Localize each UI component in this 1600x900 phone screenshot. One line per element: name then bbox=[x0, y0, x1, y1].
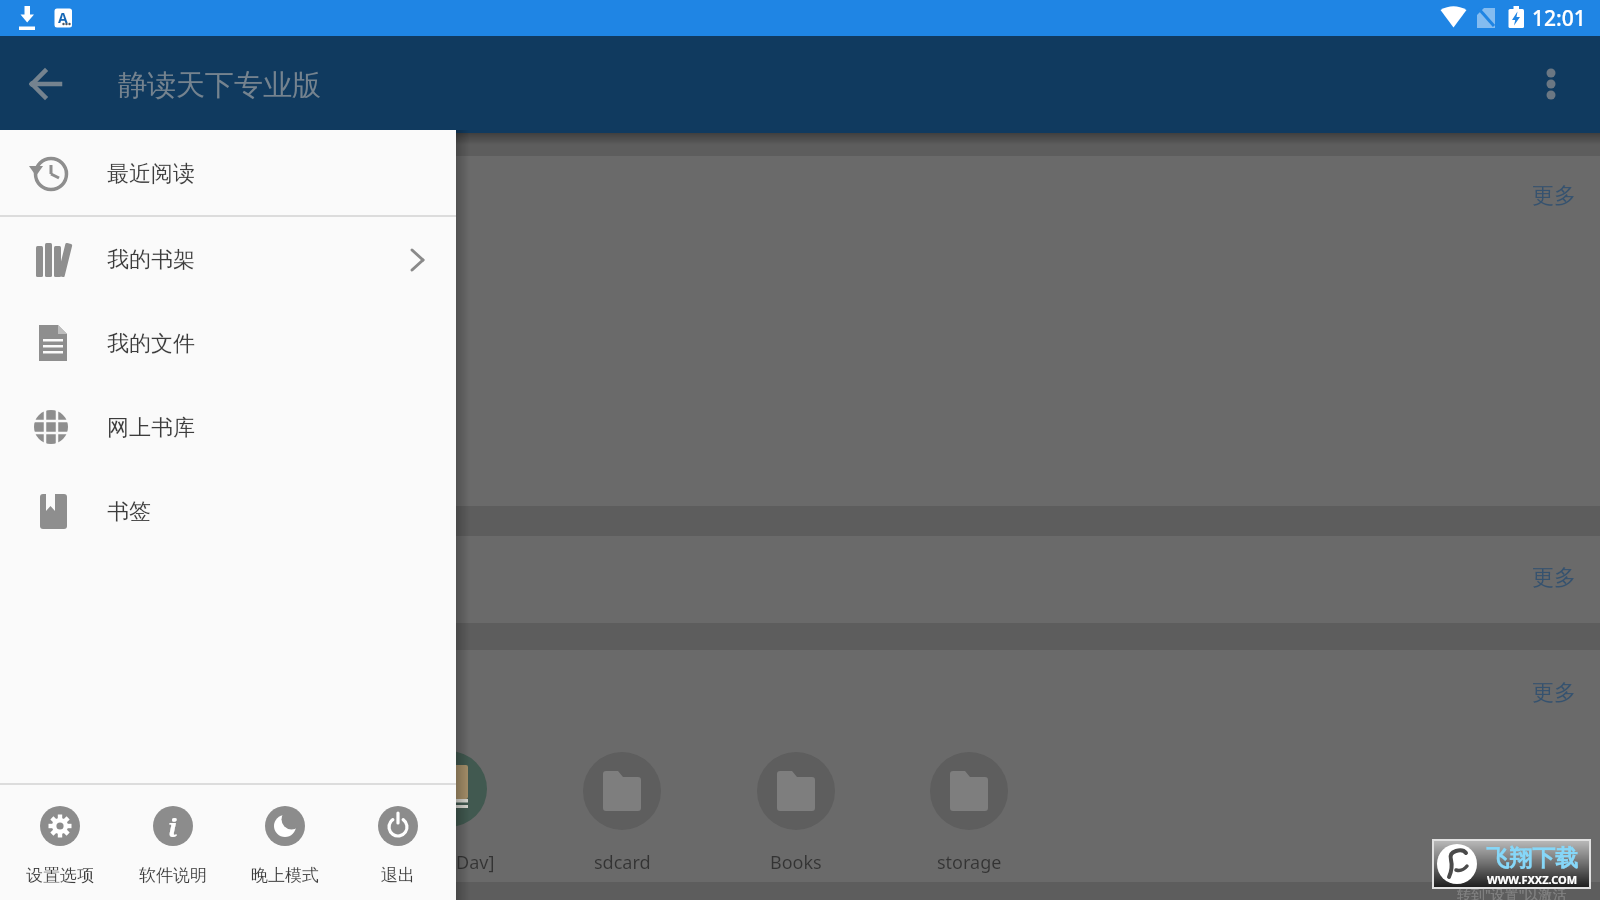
staticText: 网上书库 bbox=[107, 414, 195, 442]
staticText: 最近阅读 bbox=[107, 160, 195, 188]
staticText: 我的书架 bbox=[107, 246, 195, 274]
staticText: 书签 bbox=[107, 498, 151, 526]
staticText: Books bbox=[770, 850, 822, 875]
staticText: 12:01 bbox=[1532, 4, 1586, 33]
staticText: A bbox=[58, 8, 68, 27]
staticText: storage bbox=[937, 850, 1002, 875]
staticText: 更多 bbox=[1532, 564, 1576, 592]
staticText: 飞翔下载 bbox=[1486, 844, 1578, 873]
staticText: 软件说明 bbox=[139, 865, 207, 886]
staticText: 更多 bbox=[1532, 679, 1576, 707]
staticText: Dav] bbox=[456, 850, 495, 875]
staticText: 转到"设置"以激活 bbox=[1457, 885, 1567, 900]
staticText: i bbox=[168, 809, 178, 844]
staticText: 静读天下专业版 bbox=[118, 67, 321, 104]
staticText: 晚上模式 bbox=[251, 865, 319, 886]
staticText: 退出 bbox=[381, 865, 415, 886]
staticText: 更多 bbox=[1532, 182, 1576, 210]
staticText: 设置选项 bbox=[26, 865, 94, 886]
staticText: sdcard bbox=[594, 850, 651, 875]
staticText: WWW.FXXZ.COM bbox=[1487, 872, 1578, 887]
staticText: 我的文件 bbox=[107, 330, 195, 358]
